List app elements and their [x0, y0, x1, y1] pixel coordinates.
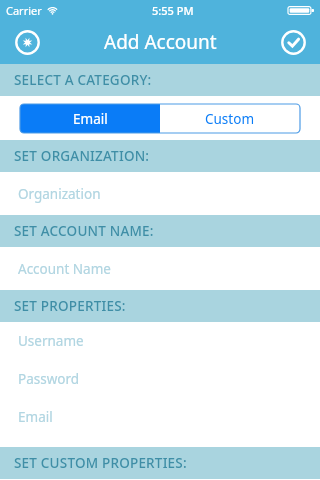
staticText: SET CUSTOM PROPERTIES: [14, 454, 187, 472]
staticText: Account Name [18, 260, 111, 278]
staticText: Add Account [104, 29, 217, 55]
button[interactable]: Cancel [10, 25, 44, 59]
button[interactable]: Organization [0, 172, 320, 215]
button[interactable]: Email [0, 398, 320, 436]
staticText: SET ORGANIZATION: [14, 147, 150, 165]
button[interactable]: Password [0, 360, 320, 398]
staticText: Carrier [6, 3, 42, 18]
button[interactable]: Account Name [0, 247, 320, 290]
staticText: Username [18, 332, 84, 350]
staticText: Custom [205, 110, 255, 128]
staticText: SELECT A CATEGORY: [14, 71, 152, 89]
staticText: Email [18, 408, 53, 426]
button[interactable]: Email [20, 104, 160, 133]
staticText: 5:55 PM [152, 3, 194, 18]
staticText: Password [18, 370, 80, 388]
button[interactable]: Custom [160, 104, 300, 133]
staticText: SET ACCOUNT NAME: [14, 222, 154, 240]
staticText: Email [73, 110, 108, 128]
staticText: Organization [18, 185, 101, 203]
button[interactable]: Username [0, 322, 320, 360]
staticText: SET PROPERTIES: [14, 297, 126, 315]
button[interactable]: Done [276, 25, 310, 59]
